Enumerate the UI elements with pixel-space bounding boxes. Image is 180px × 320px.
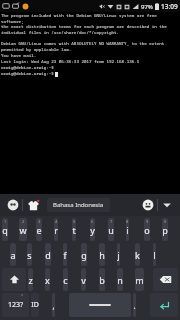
staticText: 5 (73, 219, 76, 224)
staticText: 13:09 (161, 2, 178, 11)
button[interactable]: s (27, 243, 32, 266)
button[interactable]: a (10, 243, 16, 266)
button[interactable]: o (144, 218, 150, 241)
staticText: t (72, 224, 76, 236)
staticText: j (117, 249, 120, 261)
staticText: b (99, 274, 105, 286)
button[interactable]: Enter (150, 293, 178, 317)
staticText: . (133, 300, 136, 311)
staticText: g (81, 249, 87, 261)
staticText: 1 (4, 219, 7, 224)
staticText: 3 (38, 219, 41, 224)
staticText: the exact distribution terms for each pr… (1, 24, 167, 30)
button[interactable]: 123? (2, 293, 29, 317)
button[interactable]: . (133, 293, 136, 317)
button[interactable]: v (81, 268, 86, 291)
button[interactable]: d (45, 243, 51, 266)
button[interactable]: r (54, 218, 58, 241)
button[interactable]: n (117, 268, 123, 291)
button[interactable]: f (63, 243, 67, 266)
staticText: You have mail. (1, 53, 37, 59)
staticText: 9 (146, 219, 149, 224)
button[interactable]: k (135, 243, 140, 266)
button[interactable]: , (52, 293, 55, 317)
staticText: w (19, 224, 27, 236)
staticText: Last login: Wed Aug 23 06:36:33 2017 fro… (1, 59, 140, 65)
button[interactable]: z (28, 268, 33, 291)
staticText: f (63, 249, 67, 261)
staticText: Debian GNU/Linux comes with ABSOLUTELY N… (1, 41, 165, 47)
button[interactable]: t (72, 218, 76, 241)
staticText: c (63, 274, 68, 286)
staticText: m (135, 274, 144, 286)
staticText: individual files in /usr/share/doc/*/cop… (1, 30, 120, 36)
staticText: 7 (110, 219, 113, 224)
staticText: h (99, 249, 105, 261)
staticText: 97% (141, 3, 153, 11)
staticText: p (162, 224, 168, 236)
button[interactable]: u (108, 218, 114, 241)
button[interactable]: Collapse keyboard (158, 196, 176, 214)
staticText: o (144, 224, 150, 236)
button[interactable]: x (45, 268, 50, 291)
staticText: , (52, 300, 55, 311)
button[interactable]: Stickers (4, 196, 22, 214)
button[interactable]: Themes (23, 195, 43, 215)
staticText: ° (21, 293, 24, 300)
staticText: 0 (164, 219, 167, 224)
staticText: q (2, 224, 8, 236)
staticText: u (108, 224, 114, 236)
button[interactable]: e (36, 218, 42, 241)
staticText: n (117, 274, 123, 286)
staticText: z (28, 274, 33, 286)
button[interactable]: g (81, 243, 87, 266)
staticText: x (45, 274, 50, 286)
staticText: i (126, 224, 129, 236)
button[interactable]: m (135, 268, 144, 291)
staticText: r (54, 224, 58, 236)
button[interactable]: Shift (2, 268, 26, 291)
button[interactable]: j (117, 243, 120, 266)
staticText: a (10, 249, 16, 261)
button[interactable]: p (162, 218, 168, 241)
staticText: 2 (22, 219, 25, 224)
button[interactable]: l (153, 243, 156, 266)
staticText: orwig@debian-orwig:~$ (1, 71, 54, 77)
staticText: d (45, 249, 51, 261)
button[interactable]: i (126, 218, 129, 241)
button[interactable]: Bahasa Indonesia (47, 198, 110, 212)
button[interactable]: q (2, 218, 8, 241)
staticText: ID (31, 300, 39, 310)
button[interactable]: y (90, 218, 95, 241)
button[interactable]: h (99, 243, 105, 266)
staticText: 8 (126, 219, 129, 224)
staticText: y (90, 224, 95, 236)
staticText: k (135, 249, 140, 261)
button[interactable]: w (19, 218, 27, 241)
button[interactable]: Space (69, 293, 131, 317)
staticText: 6 (91, 219, 94, 224)
staticText: orwig@debian-orwig:~$ (1, 65, 54, 71)
staticText: The program included with the Debian GNU… (1, 13, 180, 24)
button[interactable]: b (99, 268, 105, 291)
button[interactable]: c (63, 268, 68, 291)
staticText: Bahasa Indonesia (53, 201, 104, 209)
staticText: 4 (55, 219, 58, 224)
button[interactable]: Emoji (139, 196, 157, 214)
staticText: l (153, 249, 156, 261)
staticText: 123? (8, 300, 24, 310)
staticText: permitted by applicable law. (1, 47, 72, 53)
button[interactable]: ID (31, 293, 39, 317)
staticText: v (81, 274, 86, 286)
staticText: e (36, 224, 42, 236)
button[interactable]: Backspace (153, 268, 178, 291)
staticText: s (27, 249, 32, 261)
